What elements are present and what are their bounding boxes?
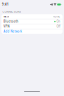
button[interactable]: VPN xyxy=(1,24,63,29)
staticText: Wi-Fi xyxy=(3,15,9,18)
staticText: Bluetooth xyxy=(3,20,18,23)
staticText: Off xyxy=(57,25,61,28)
staticText: Home xyxy=(53,15,61,18)
staticText: 9:41 xyxy=(2,3,9,6)
button[interactable]: Bluetooth xyxy=(1,19,63,24)
button[interactable]: Wi-Fi xyxy=(1,14,63,19)
staticText: Add Network xyxy=(3,30,21,33)
button[interactable]: Add Network xyxy=(1,29,63,34)
staticText: VPN xyxy=(3,25,9,28)
staticText: CONNECTIONS xyxy=(2,10,20,13)
staticText: On xyxy=(57,20,61,23)
